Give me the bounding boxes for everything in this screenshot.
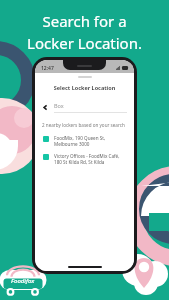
- staticText: Box: [54, 102, 64, 109]
- staticText: Foodifox: [11, 277, 35, 285]
- button[interactable]: FoodMix, 190 Queen St, Melbourne 3000: [43, 135, 126, 147]
- staticText: Victory Offices - FoodMix Café, 180 St K…: [54, 153, 126, 165]
- button[interactable]: Victory Offices - FoodMix Café, 180 St K…: [43, 153, 126, 165]
- button[interactable]: Foodifox logo: [0, 262, 48, 298]
- staticText: 12:47: [41, 65, 54, 72]
- staticText: FoodMix, 190 Queen St, Melbourne 3000: [54, 135, 126, 147]
- staticText: Locker Location.: [27, 33, 142, 53]
- staticText: Select Locker Location: [35, 84, 134, 91]
- staticText: 2 nearby lockers based on your search: [42, 122, 125, 128]
- staticText: Search for a: [42, 11, 127, 31]
- other: Back: [42, 104, 49, 111]
- button[interactable]: Back: [42, 101, 127, 114]
